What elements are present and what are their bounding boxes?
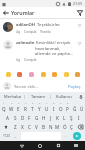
staticText: Kesinlikle! erciyek hazırlanmak, ailemde… [35,40,74,56]
button[interactable]: grin [4,70,12,78]
staticText: X [21,124,24,130]
button[interactable]: Like [76,40,82,46]
button[interactable]: Send [74,7,85,18]
button[interactable]: B [40,122,47,131]
button[interactable]: Hide keyboard [67,141,85,150]
button[interactable]: Recents [49,141,67,150]
button[interactable]: E [15,104,22,113]
staticText: zalinadin [16,40,35,46]
button[interactable]: Comma [12,132,20,140]
button[interactable]: H [40,113,47,122]
button[interactable]: smile [62,70,70,78]
button[interactable]: V [33,122,40,131]
button[interactable]: Q [0,104,8,113]
button[interactable]: Period [62,132,70,140]
button[interactable]: T [29,104,36,113]
staticText: 5 [32,101,34,104]
button[interactable]: N [47,122,54,131]
staticText: Yanıtla [40,29,51,34]
staticText: Tamam [31,94,45,99]
button[interactable]: M [54,122,61,131]
button[interactable]: U [43,104,50,113]
staticText: Teşekkürler. [36,22,61,28]
button[interactable]: hand [73,70,81,78]
button[interactable]: Yorum ekle... [14,84,67,89]
button[interactable]: Y [36,104,43,113]
button[interactable]: P [64,104,71,113]
button[interactable]: Backspace [75,122,85,131]
button[interactable]: D [19,113,26,122]
button[interactable]: I [75,113,82,122]
staticText: 4g [16,29,21,34]
button[interactable]: Home [31,141,49,150]
button[interactable]: X [19,122,26,131]
staticText: Yorumlar [11,9,35,16]
staticText: . [65,133,67,139]
staticText: S [14,115,17,121]
button[interactable]: blossom [27,70,35,78]
button[interactable]: O [57,104,64,113]
button[interactable]: Kullanıcı [51,92,76,101]
button[interactable]: ?123 [1,132,12,140]
button[interactable]: C [26,122,33,131]
button[interactable]: F [26,113,33,122]
staticText: K [56,115,59,121]
button[interactable]: R [22,104,29,113]
staticText: Yorum ekle... [14,84,39,89]
staticText: V [35,124,38,130]
staticText: P [66,106,69,112]
button[interactable]: Merhaba [0,92,24,101]
staticText: Y [38,106,41,112]
button[interactable]: pray [50,70,58,78]
button[interactable]: Ü [78,104,85,113]
staticText: M [55,124,60,130]
staticText: G [35,115,39,121]
staticText: C [28,124,31,130]
button[interactable]: Z [11,122,19,131]
button[interactable]: Ğ [71,104,78,113]
staticText: Cevapla [24,29,37,34]
staticText: Ö [63,124,67,130]
button[interactable]: K [54,113,61,122]
staticText: R [24,106,27,112]
button[interactable]: Back [12,141,31,150]
button[interactable]: Ş [68,113,75,122]
button[interactable]: zalinadin [0,37,85,65]
staticText: 0 [67,101,69,104]
staticText: U [45,106,49,112]
button[interactable]: Ç [68,122,75,131]
staticText: I [78,115,80,121]
staticText: 6 [39,101,41,104]
button[interactable]: Shift [0,122,11,131]
staticText: Cevapla [24,57,37,62]
staticText: O [59,106,63,112]
button[interactable]: L [61,113,68,122]
button[interactable]: W [8,104,15,113]
button[interactable]: I [50,104,57,113]
staticText: W [9,106,14,112]
staticText: A [6,115,9,121]
button[interactable]: clap [39,70,47,78]
button[interactable]: A [3,113,11,122]
staticText: N [49,124,53,130]
button[interactable]: Voice input [76,92,85,101]
button[interactable]: Paylaş [67,84,82,89]
button[interactable]: adilanOH [0,19,85,37]
staticText: E [17,106,20,112]
button[interactable]: S [11,113,19,122]
button[interactable]: Ö [61,122,68,131]
button[interactable]: Like [76,22,82,28]
button[interactable]: J [47,113,54,122]
staticText: 3 [18,101,20,104]
button[interactable]: Tamam [25,92,50,101]
staticText: 1 [3,101,5,104]
staticText: H [42,115,46,121]
button[interactable]: G [33,113,40,122]
button[interactable]: Back [0,7,11,18]
button[interactable]: fire [15,70,23,78]
staticText: Ğ [73,106,77,112]
staticText: Ü [80,106,84,112]
button[interactable]: Send message [73,132,81,140]
staticText: Paylaş [68,84,81,89]
